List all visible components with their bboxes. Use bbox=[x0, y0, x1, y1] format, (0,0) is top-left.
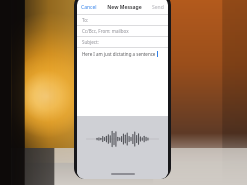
button[interactable]: Subject: bbox=[77, 37, 168, 48]
button[interactable]: Dictation waveform bbox=[77, 116, 168, 179]
staticText: New Message bbox=[107, 4, 142, 11]
staticText: Cancel bbox=[81, 4, 97, 11]
staticText: Cc/Bcc, From: mailbox bbox=[82, 28, 129, 34]
staticText: To: bbox=[82, 17, 89, 23]
button[interactable]: Here I am just dictating a sentence bbox=[77, 48, 168, 116]
staticText: Subject: bbox=[82, 39, 99, 45]
staticText: Send bbox=[152, 4, 164, 11]
button[interactable]: To: bbox=[77, 15, 168, 26]
button[interactable]: Cc/Bcc, From: mailbox bbox=[77, 26, 168, 37]
button[interactable]: Cancel bbox=[77, 4, 99, 11]
button[interactable]: Send bbox=[150, 4, 168, 11]
staticText: Here I am just dictating a sentence bbox=[82, 51, 156, 57]
